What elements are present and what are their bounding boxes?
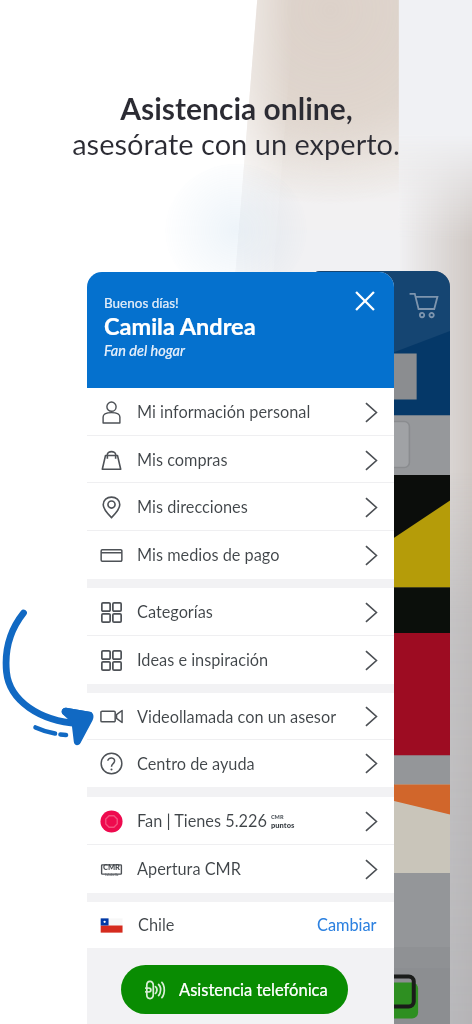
staticText: Fan del hogar <box>104 342 185 359</box>
staticText: falabella <box>105 872 119 876</box>
staticText: CMR <box>271 814 284 821</box>
staticText: Asistencia online, <box>120 90 353 126</box>
staticText: Cambiar <box>317 915 377 935</box>
button[interactable]: Asistencia telefónica <box>121 965 348 1014</box>
staticText: asesórate con un experto. <box>72 126 400 161</box>
staticText: Camila Andrea <box>104 312 256 340</box>
staticText: Categorías <box>137 602 213 622</box>
button[interactable]: Cerrar <box>349 285 381 317</box>
staticText: Apertura CMR <box>137 859 241 879</box>
staticText: Mi información personal <box>137 402 311 422</box>
button[interactable]: Centro de ayuda <box>87 740 394 787</box>
staticText: Mis medios de pago <box>137 545 280 565</box>
button[interactable]: Mis direcciones <box>87 483 394 531</box>
staticText: Ideas e inspiración <box>137 650 269 670</box>
staticText: Videollamada con un asesor <box>137 707 337 727</box>
staticText: Chile <box>138 915 175 935</box>
button[interactable]: Mi información personal <box>87 388 394 436</box>
button[interactable]: Videollamada con un asesor <box>87 693 394 740</box>
button[interactable]: CMR <box>87 845 394 893</box>
button[interactable]: Categorías <box>87 588 394 636</box>
staticText: Mis compras <box>137 450 228 470</box>
staticText: Fan | Tienes 5.226 <box>137 811 267 831</box>
other: Carro de compras <box>409 291 438 320</box>
button[interactable]: Fan | Tienes 5.226 <box>87 797 394 845</box>
button[interactable]: Ideas e inspiración <box>87 636 394 684</box>
staticText: CMR <box>103 863 121 872</box>
button[interactable]: Chile <box>87 902 394 948</box>
staticText: Mis direcciones <box>137 497 248 517</box>
staticText: puntos <box>271 821 295 830</box>
button[interactable]: Mis compras <box>87 436 394 484</box>
staticText: Asistencia telefónica <box>179 980 328 1000</box>
button[interactable]: Mis medios de pago <box>87 531 394 579</box>
staticText: Buenos días! <box>104 295 179 311</box>
staticText: Centro de ayuda <box>137 754 255 774</box>
